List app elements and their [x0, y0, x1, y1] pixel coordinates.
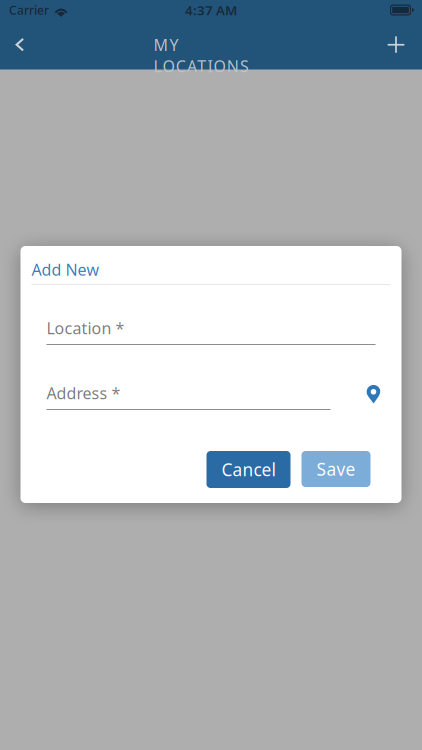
button[interactable]: Add location [376, 23, 416, 67]
staticText: Save [316, 457, 355, 480]
staticText: Carrier [9, 2, 49, 18]
staticText: 4:37 AM [185, 1, 237, 19]
staticText: MY LOCATIONS [153, 34, 281, 55]
button[interactable]: Cancel [206, 451, 290, 488]
staticText: Location * [46, 317, 124, 339]
button[interactable]: Choose location on map [356, 377, 390, 411]
button[interactable]: Back [0, 23, 40, 67]
staticText: Address * [46, 382, 120, 404]
staticText: Add New [31, 259, 99, 280]
button[interactable]: Save [301, 451, 370, 487]
staticText: Cancel [221, 458, 275, 481]
